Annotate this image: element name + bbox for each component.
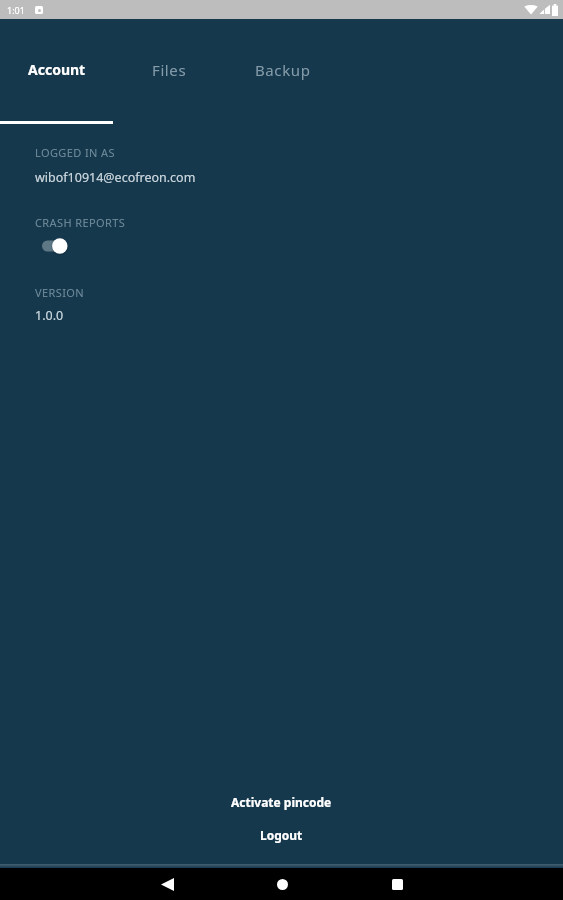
button[interactable]: Crash reports, on xyxy=(35,231,85,257)
staticText: CRASH REPORTS xyxy=(35,215,126,230)
button[interactable]: Home xyxy=(260,868,304,900)
staticText: 1:01 xyxy=(7,4,25,16)
button[interactable]: Recent apps xyxy=(375,868,419,900)
staticText: VERSION xyxy=(35,285,85,300)
staticText: Backup xyxy=(255,60,311,80)
staticText: Files xyxy=(152,60,187,80)
button[interactable]: Account xyxy=(0,19,113,121)
staticText: 1.0.0 xyxy=(35,307,64,324)
button[interactable]: Files xyxy=(113,19,226,121)
button[interactable]: Back xyxy=(145,868,189,900)
button[interactable]: Logout xyxy=(0,824,563,846)
staticText: Account xyxy=(28,60,86,79)
staticText: Logout xyxy=(260,827,303,843)
button[interactable]: Backup xyxy=(226,19,339,121)
staticText: wibof10914@ecofreon.com xyxy=(35,169,196,186)
staticText: LOGGED IN AS xyxy=(35,145,115,160)
staticText: Activate pincode xyxy=(231,794,332,810)
button[interactable]: Activate pincode xyxy=(0,791,563,813)
